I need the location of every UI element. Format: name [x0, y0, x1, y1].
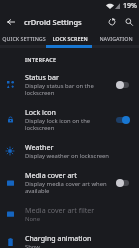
button[interactable]: NAVIGATION — [93, 32, 139, 45]
staticText: crDroid Settings — [24, 17, 82, 27]
button[interactable]: Weather — [0, 137, 139, 165]
staticText: Status bar — [25, 72, 59, 82]
button[interactable]: Reset — [103, 12, 120, 32]
button[interactable]: Charging animation — [0, 228, 139, 248]
staticText: None — [25, 215, 41, 223]
staticText: Display status bar on the lockscreen — [25, 82, 112, 97]
button[interactable]: Toggle off — [114, 80, 130, 90]
staticText: 19% — [123, 1, 137, 11]
staticText: Media cover art — [25, 170, 77, 180]
staticText: Weather — [25, 142, 54, 152]
button[interactable]: QUICK SETTINGS — [0, 32, 47, 45]
staticText: QUICK SETTINGS — [2, 35, 46, 42]
staticText: Lock icon — [25, 107, 56, 117]
button[interactable]: Media cover art filter — [0, 200, 139, 228]
staticText: LOCK SCREEN — [52, 35, 88, 42]
staticText: INTERFACE — [25, 56, 57, 63]
staticText: Display media cover art when available — [25, 180, 112, 195]
button[interactable]: Search — [120, 12, 137, 32]
button[interactable]: Lock icon — [0, 102, 139, 137]
button[interactable]: Media cover art — [0, 165, 139, 200]
staticText: Display lock icon on the lockscreen — [25, 117, 112, 132]
button[interactable]: Toggle off — [114, 178, 130, 188]
button[interactable]: Toggle on — [114, 115, 130, 125]
button[interactable]: Back — [0, 12, 23, 32]
button[interactable]: LOCK SCREEN — [47, 32, 93, 45]
button[interactable]: Status bar — [0, 67, 139, 102]
staticText: Media cover art filter — [25, 205, 95, 215]
staticText: Charging animation — [25, 233, 92, 243]
staticText: Display weather on lockscreen — [25, 152, 109, 160]
staticText: Show — [25, 243, 40, 248]
staticText: NAVIGATION — [99, 35, 133, 42]
